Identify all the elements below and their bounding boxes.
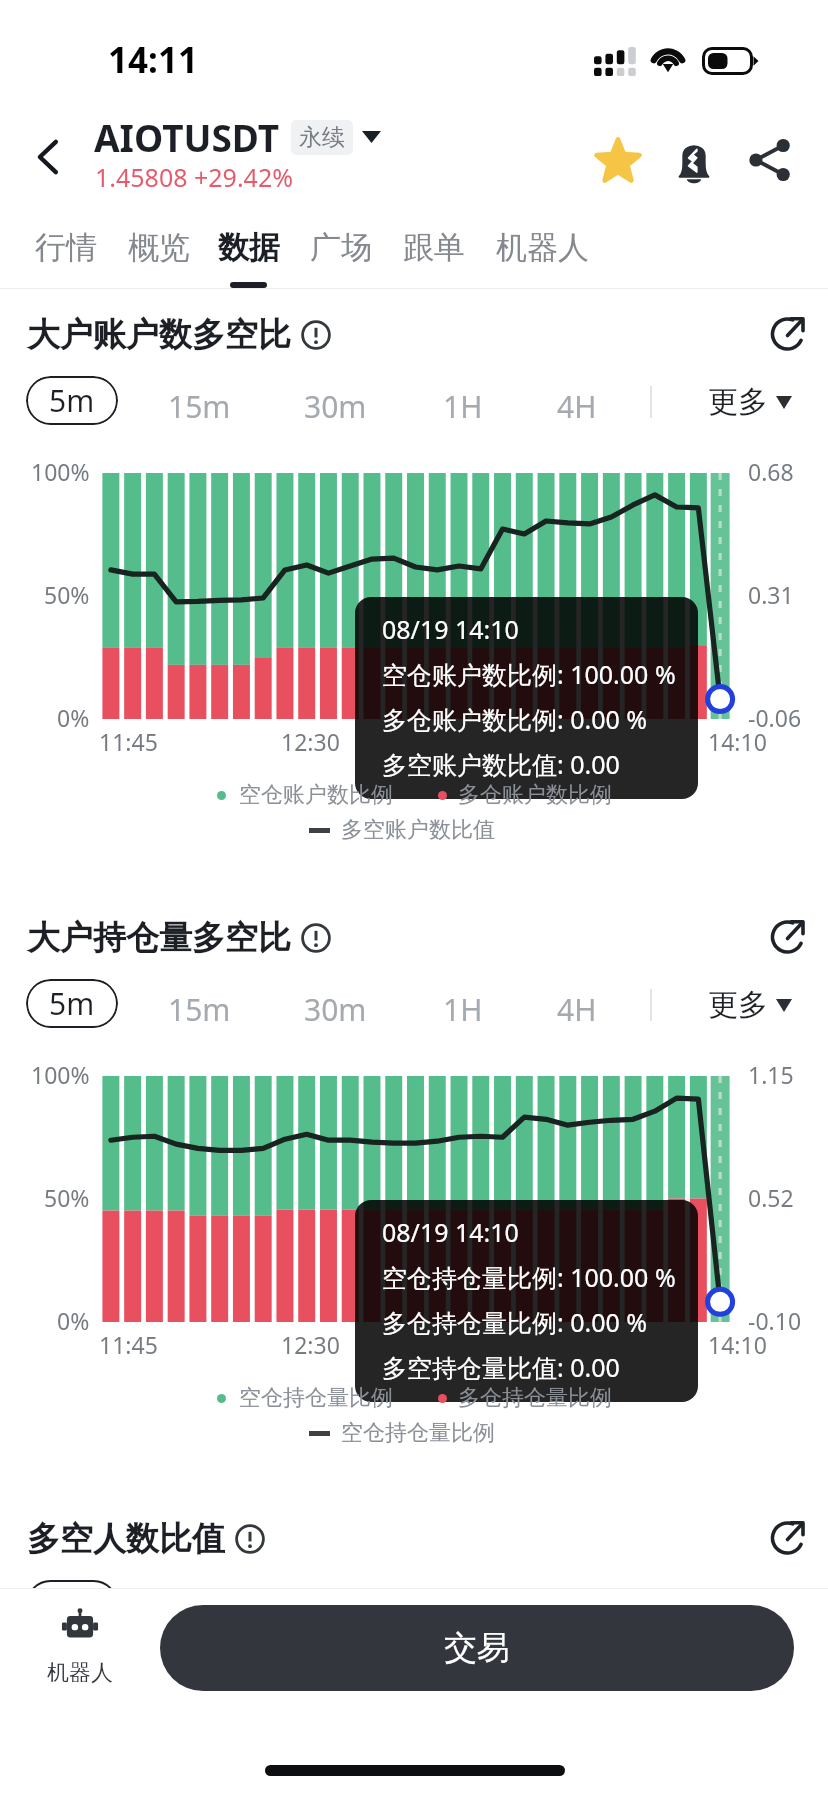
staticText: 5m xyxy=(49,380,95,421)
button[interactable]: Favorite xyxy=(584,126,652,194)
button[interactable]: 概览 xyxy=(116,222,202,273)
staticText: 11:45 xyxy=(99,726,158,757)
staticText: 15m xyxy=(168,386,231,427)
staticText: 0% xyxy=(57,1305,90,1336)
staticText: 大户持仓量多空比 xyxy=(27,917,291,959)
staticText: -0.10 xyxy=(748,1305,802,1336)
button[interactable]: 交易 xyxy=(160,1605,794,1691)
staticText: 多空账户数比值 xyxy=(341,816,495,844)
staticText: 1H xyxy=(443,386,483,427)
staticText: 广场 xyxy=(310,228,372,267)
button[interactable]: Price alert xyxy=(660,126,728,194)
button[interactable]: 30m xyxy=(294,378,377,435)
button[interactable]: Expand chart xyxy=(763,906,819,962)
staticText: 1.15 xyxy=(748,1059,794,1090)
staticText: 4H xyxy=(557,386,597,427)
staticText: 1.45808 +29.42% xyxy=(95,160,293,194)
button[interactable]: Back xyxy=(14,122,84,192)
staticText: 30m xyxy=(304,386,367,427)
staticText: -0.06 xyxy=(748,702,802,733)
staticText: 0.52 xyxy=(748,1182,794,1213)
staticText: 5m xyxy=(49,983,95,1024)
button[interactable]: 数据 xyxy=(206,222,292,273)
staticText: 更多 xyxy=(708,383,768,421)
staticText: 空仓持仓量比例 xyxy=(341,1419,495,1447)
button[interactable]: 行情 xyxy=(23,222,109,273)
staticText: 多仓账户数比例: 0.00 % xyxy=(382,702,648,736)
staticText: 更多 xyxy=(708,986,768,1024)
staticText: 0.68 xyxy=(748,456,794,487)
button[interactable]: 15m xyxy=(158,981,241,1038)
staticText: 数据 xyxy=(218,228,280,267)
staticText: 50% xyxy=(44,579,90,610)
button[interactable]: 更多 xyxy=(700,377,800,427)
button[interactable]: 1H xyxy=(433,981,493,1038)
button[interactable]: 机器人 xyxy=(484,222,601,273)
staticText: 08/19 14:10 xyxy=(382,612,519,646)
button[interactable]: 4H xyxy=(547,378,607,435)
staticText: 50% xyxy=(44,1182,90,1213)
staticText: 概览 xyxy=(128,228,190,267)
button[interactable]: 4H xyxy=(547,981,607,1038)
staticText: 0% xyxy=(57,702,90,733)
staticText: 多空持仓量比值: 0.00 xyxy=(382,1350,620,1384)
staticText: 30m xyxy=(304,989,367,1030)
staticText: 多仓持仓量比例: 0.00 % xyxy=(382,1305,648,1339)
staticText: 多空账户数比值: 0.00 xyxy=(382,747,620,781)
staticText: 4H xyxy=(557,989,597,1030)
staticText: 多空人数比值 xyxy=(27,1518,225,1560)
button[interactable]: Share xyxy=(736,126,804,194)
staticText: AIOTUSDT xyxy=(94,112,280,162)
staticText: 空仓持仓量比例 xyxy=(239,1384,393,1412)
staticText: 1H xyxy=(443,989,483,1030)
staticText: 12:30 xyxy=(281,726,340,757)
button[interactable]: 更多 xyxy=(700,980,800,1030)
staticText: 100% xyxy=(31,1059,90,1090)
staticText: 08/19 14:10 xyxy=(382,1215,519,1249)
staticText: 多仓持仓量比例 xyxy=(458,1384,612,1412)
staticText: 机器人 xyxy=(496,228,589,267)
staticText: 交易 xyxy=(444,1627,510,1669)
button[interactable]: Expand chart xyxy=(763,303,819,359)
button[interactable]: Expand chart xyxy=(763,1507,819,1563)
staticText: 行情 xyxy=(35,228,97,267)
staticText: 多仓账户数比例 xyxy=(458,781,612,809)
button[interactable]: 跟单 xyxy=(391,222,477,273)
staticText: 空仓账户数比例 xyxy=(239,781,393,809)
staticText: 机器人 xyxy=(47,1659,113,1687)
staticText: 11:45 xyxy=(99,1329,158,1360)
staticText: 跟单 xyxy=(403,228,465,267)
staticText: 0.31 xyxy=(748,579,794,610)
button[interactable]: 1H xyxy=(433,378,493,435)
button[interactable]: 5m xyxy=(26,979,118,1028)
button[interactable]: 30m xyxy=(294,981,377,1038)
button[interactable]: 15m xyxy=(158,378,241,435)
staticText: 空仓持仓量比例: 100.00 % xyxy=(382,1260,676,1294)
staticText: 14:11 xyxy=(108,36,198,84)
button[interactable]: 5m xyxy=(26,376,118,425)
staticText: 永续 xyxy=(299,123,345,152)
button[interactable]: 机器人 xyxy=(24,1603,136,1691)
staticText: 14:10 xyxy=(708,726,767,757)
staticText: 12:30 xyxy=(281,1329,340,1360)
staticText: 100% xyxy=(31,456,90,487)
staticText: 大户账户数多空比 xyxy=(27,314,291,356)
button[interactable]: 广场 xyxy=(298,222,384,273)
staticText: 空仓账户数比例: 100.00 % xyxy=(382,657,676,691)
staticText: 15m xyxy=(168,989,231,1030)
staticText: 14:10 xyxy=(708,1329,767,1360)
